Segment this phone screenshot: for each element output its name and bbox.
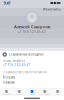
staticText: Чаты bbox=[30, 93, 34, 95]
button[interactable]: Чаты bbox=[26, 88, 38, 96]
staticText: +7 916 123-45-67 bbox=[18, 30, 46, 34]
button[interactable]: Изменить bbox=[41, 6, 61, 12]
staticText: Ещё bbox=[56, 93, 59, 95]
button[interactable]: Контакты bbox=[0, 88, 13, 96]
button[interactable]: Ещё bbox=[51, 88, 64, 96]
staticText: +7 916 123-45-67 bbox=[2, 63, 30, 67]
staticText: Изменить bbox=[42, 6, 60, 12]
staticText: Номер телефона bbox=[2, 59, 24, 63]
staticText: Сохранённые сообщения bbox=[9, 53, 44, 56]
button[interactable]: Telegram bbox=[0, 75, 64, 80]
staticText: Звонки bbox=[16, 93, 22, 95]
staticText: Контакты bbox=[2, 93, 10, 95]
staticText: СОЦИАЛЬНЫЕ СЕТИ И КОНТАКТЫ bbox=[2, 70, 46, 74]
button[interactable]: Сохранённые сообщения bbox=[0, 51, 64, 58]
staticText: 9:41 bbox=[3, 0, 10, 6]
staticText: Настройки bbox=[40, 93, 49, 95]
staticText: Алексей Смирнов bbox=[14, 24, 50, 29]
button[interactable]: Звонки bbox=[13, 88, 26, 96]
staticText: Instagram bbox=[2, 81, 14, 84]
staticText: Telegram bbox=[2, 76, 14, 79]
button[interactable]: Настройки bbox=[38, 88, 51, 96]
button[interactable]: Instagram bbox=[0, 80, 64, 85]
